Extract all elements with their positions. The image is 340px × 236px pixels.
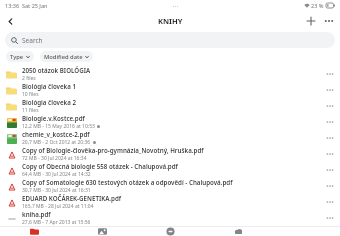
button[interactable]: More options	[324, 132, 336, 144]
button[interactable]: More options	[324, 164, 336, 176]
button[interactable]: kniha.pdf	[0, 210, 340, 226]
staticText: KNIHY	[158, 16, 183, 26]
staticText: 23 %	[311, 2, 324, 9]
button[interactable]: Search	[5, 32, 335, 48]
button[interactable]: More options	[324, 116, 336, 128]
staticText: 165,7 MB - 28 Jul 2024 at 11:04	[22, 203, 94, 210]
staticText: 72 MB - 30 Jul 2024 at 16:34	[22, 155, 87, 162]
staticText: 12,2 MB - 15 May 2016 at 10:53	[22, 123, 95, 130]
button[interactable]: Files	[0, 227, 68, 236]
button[interactable]: Cloud	[204, 227, 272, 236]
staticText: 27,6 MB - 7 Apr 2013 at 15:56	[22, 219, 91, 226]
staticText: 2050 otázok BIOLÓGIA	[22, 66, 91, 74]
button[interactable]: Biologie.v.Kostce.pdf	[0, 114, 340, 130]
button[interactable]: Back	[3, 14, 17, 28]
button[interactable]: More options	[324, 100, 336, 112]
staticText: Modified date	[44, 53, 83, 61]
button[interactable]: More options	[324, 84, 336, 96]
button[interactable]: Copy of Somatologie 630 testových otázek…	[0, 178, 340, 194]
button[interactable]: More options	[324, 180, 336, 192]
staticText: 11 files	[22, 107, 39, 114]
button[interactable]: More options	[322, 14, 336, 28]
button[interactable]: Modified date	[40, 51, 93, 62]
staticText: Type	[10, 53, 24, 61]
button[interactable]: EDUARD KOČÁREK-GENETIKA.pdf	[0, 194, 340, 210]
staticText: 10 files	[22, 91, 39, 98]
staticText: Copy of Somatologie 630 testových otázek…	[22, 178, 233, 186]
staticText: kniha.pdf	[22, 210, 51, 218]
staticText: Biologie.v.Kostce.pdf	[22, 114, 85, 122]
staticText: ⋯	[173, 3, 179, 9]
staticText: 20,7 MB - 2 Oct 2012 at 20:36	[22, 139, 91, 146]
button[interactable]: Photos	[68, 227, 136, 236]
staticText: Search	[22, 36, 43, 45]
staticText: chemie_v_kostce-2.pdf	[22, 130, 90, 138]
button[interactable]: Copy of Biologie-člověka-pro-gymnázia_No…	[0, 146, 340, 162]
staticText: 64,4 MB - 30 Jul 2024 at 14:32	[22, 171, 91, 178]
staticText: 2 files	[22, 75, 36, 82]
staticText: EDUARD KOČÁREK-GENETIKA.pdf	[22, 194, 122, 202]
button[interactable]: Copy of Obecná biologie 558 otázek - Cha…	[0, 162, 340, 178]
button[interactable]: Biológia človeka 1	[0, 82, 340, 98]
staticText: Copy of Biologie-člověka-pro-gymnázia_No…	[22, 146, 204, 154]
staticText: Biológia človeka 2	[22, 98, 77, 106]
button[interactable]: Biológia človeka 2	[0, 98, 340, 114]
staticText: 30,7 MB - 30 Jul 2024 at 16:31	[22, 187, 91, 194]
staticText: 13:36 Sat 25 Jan	[5, 2, 48, 9]
button[interactable]: chemie_v_kostce-2.pdf	[0, 130, 340, 146]
staticText: Copy of Obecná biologie 558 otázek - Cha…	[22, 162, 178, 170]
button[interactable]: More options	[324, 148, 336, 160]
button[interactable]: Type	[6, 51, 34, 62]
staticText: Biológia človeka 1	[22, 82, 77, 90]
button[interactable]: More options	[324, 68, 336, 80]
button[interactable]: More options	[324, 196, 336, 208]
button[interactable]: More options	[324, 212, 336, 224]
button[interactable]: Add	[304, 14, 318, 28]
button[interactable]: 2050 otázok BIOLÓGIA	[0, 66, 340, 82]
button[interactable]: Messages	[136, 227, 204, 236]
